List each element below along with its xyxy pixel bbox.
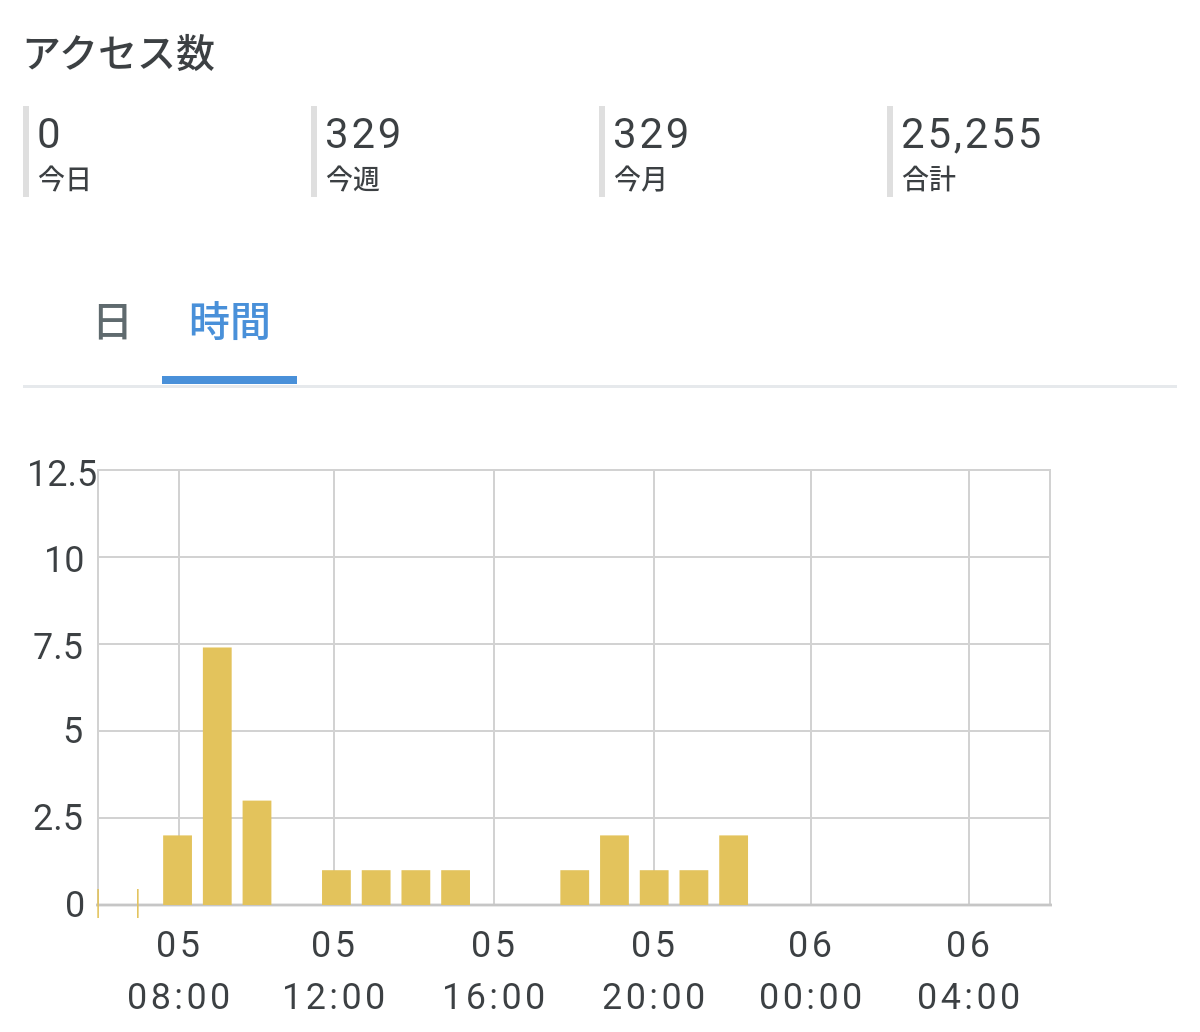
staticText: 05 bbox=[311, 924, 359, 966]
staticText: 12.5 bbox=[27, 453, 98, 495]
button[interactable]: 時間 bbox=[162, 288, 297, 384]
button[interactable]: 25,255 bbox=[887, 106, 1175, 198]
staticText: 05 bbox=[156, 924, 204, 966]
staticText: 08:00 bbox=[127, 976, 234, 1018]
staticText: 今週 bbox=[326, 158, 380, 197]
staticText: 16:00 bbox=[442, 976, 549, 1018]
staticText: 今日 bbox=[38, 158, 92, 197]
staticText: 時間 bbox=[189, 288, 271, 347]
staticText: 329 bbox=[325, 109, 405, 158]
staticText: 329 bbox=[613, 109, 693, 158]
staticText: 00:00 bbox=[759, 976, 866, 1018]
staticText: 日 bbox=[92, 288, 133, 347]
staticText: アクセス数 bbox=[22, 22, 216, 78]
staticText: 05 bbox=[471, 924, 519, 966]
staticText: 10 bbox=[44, 539, 85, 581]
staticText: 0 bbox=[65, 884, 86, 926]
button[interactable]: 日 bbox=[64, 288, 162, 384]
staticText: 20:00 bbox=[602, 976, 709, 1018]
staticText: 12:00 bbox=[282, 976, 389, 1018]
staticText: 05 bbox=[631, 924, 679, 966]
staticText: 7.5 bbox=[33, 626, 83, 668]
staticText: 25,255 bbox=[901, 109, 1045, 158]
button[interactable]: 0 bbox=[23, 106, 311, 198]
staticText: 合計 bbox=[902, 158, 956, 197]
staticText: 2.5 bbox=[33, 797, 83, 839]
button[interactable]: 329 bbox=[311, 106, 599, 198]
button[interactable]: 329 bbox=[599, 106, 887, 198]
other: Hourly access chart bbox=[0, 0, 1200, 1032]
staticText: 06 bbox=[788, 924, 836, 966]
staticText: 04:00 bbox=[917, 976, 1024, 1018]
staticText: 0 bbox=[37, 109, 64, 158]
staticText: 今月 bbox=[614, 158, 668, 197]
staticText: 5 bbox=[63, 710, 84, 752]
staticText: 06 bbox=[946, 924, 994, 966]
